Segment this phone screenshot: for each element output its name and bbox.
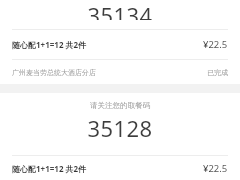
staticText: 35128 [0,113,240,143]
staticText: 随心配1+1=12 共2件 [12,39,203,50]
button[interactable]: 随心配1+1=12 共2件 [0,30,240,59]
staticText: ¥22.5 [203,162,228,175]
staticText: 35134 [0,0,240,20]
staticText: 随心配1+1=12 共2件 [12,163,203,174]
button[interactable]: 35134 [0,0,240,84]
button[interactable]: 请关注您的取餐码 [0,93,240,180]
staticText: 已完成 [207,68,228,77]
staticText: 请关注您的取餐码 [0,101,240,110]
staticText: ¥22.5 [203,38,228,51]
button[interactable]: 广州麦当劳总统大酒店分店 [0,60,240,84]
staticText: 广州麦当劳总统大酒店分店 [12,68,207,77]
button[interactable]: 随心配1+1=12 共2件 [0,156,240,180]
